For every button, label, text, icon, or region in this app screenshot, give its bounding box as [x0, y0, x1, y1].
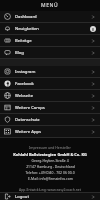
staticText: Telefon: +49 (0)40 - 702 06 00-0	[25, 170, 75, 175]
staticText: App-Entwicklung: www.easy2coach.net	[19, 187, 81, 192]
staticText: Dashboard	[15, 14, 37, 20]
staticText: 8	[92, 27, 94, 32]
staticText: Logout	[15, 194, 29, 200]
button[interactable]: Facebook	[0, 78, 100, 89]
staticText: Kohlahl Ballstrategien GmbH & Co. KG	[13, 152, 87, 157]
staticText: Instagram	[15, 69, 36, 75]
button[interactable]: Beiträge	[0, 35, 100, 46]
button[interactable]: Datenschutz	[0, 114, 100, 125]
staticText: 21147 Hamburg - Deutschland	[26, 164, 75, 169]
staticText: Datenschutz	[15, 117, 40, 123]
staticText: Impressum und Hersteller	[29, 145, 71, 150]
staticText: Weitere Camps	[15, 105, 45, 111]
button[interactable]: Weitere Camps	[0, 102, 100, 113]
staticText: Beiträge	[15, 38, 32, 44]
staticText: Weitere Apps	[15, 129, 42, 135]
button[interactable]: Blog	[0, 47, 100, 58]
button[interactable]: Weitere Apps	[0, 126, 100, 137]
staticText: Blog	[15, 50, 24, 56]
button[interactable]: Dashboard	[0, 11, 100, 22]
staticText: E-Mail: info@firmainfos.com	[28, 176, 73, 181]
button[interactable]: Logout	[0, 193, 100, 200]
staticText: Georg-Heyken-Straße 4	[31, 158, 69, 163]
staticText: Webseite	[15, 93, 34, 99]
staticText: Facebook	[15, 81, 34, 87]
staticText: MENÜ	[41, 2, 59, 9]
button[interactable]: Webseite	[0, 90, 100, 101]
staticText: Neuigkeiten	[15, 26, 39, 32]
button[interactable]: Instagram	[0, 66, 100, 77]
button[interactable]: Neuigkeiten	[0, 23, 100, 34]
